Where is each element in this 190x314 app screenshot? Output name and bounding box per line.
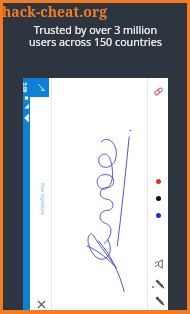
staticText: Your signature xyxy=(39,182,45,215)
staticText: hack-cheat.org xyxy=(2,2,108,21)
other: Eraser xyxy=(153,86,164,97)
staticText: 5:09 xyxy=(20,82,27,92)
other: Stamp xyxy=(154,259,164,269)
other: Pen xyxy=(154,278,165,289)
other: Close xyxy=(38,301,45,308)
staticText: Trusted by over 3 million users across 1… xyxy=(2,23,189,49)
other: Pencil xyxy=(154,295,165,306)
